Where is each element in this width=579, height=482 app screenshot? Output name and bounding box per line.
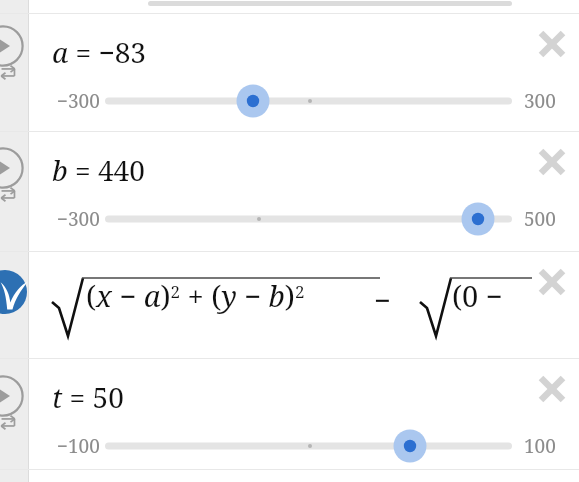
- button[interactable]: Toggle graph visibility: [0, 270, 27, 314]
- staticText: 500: [524, 206, 556, 230]
- staticText: −: [374, 280, 391, 319]
- staticText: 100: [524, 433, 556, 457]
- staticText: −100: [57, 433, 100, 457]
- button[interactable]: Play slider animation: [0, 375, 24, 417]
- button[interactable]: Play slider animation: [0, 25, 24, 67]
- button[interactable]: Slider for b: [100, 202, 520, 236]
- button[interactable]: (x − a)2 + (y − b)2: [0, 252, 579, 358]
- staticText: 300: [524, 88, 556, 112]
- button[interactable]: a = −83: [52, 33, 332, 77]
- staticText: t = 50: [52, 378, 124, 416]
- staticText: (0 −: [452, 276, 511, 315]
- button[interactable]: t = 50: [52, 378, 332, 422]
- button[interactable]: Loop mode: [0, 185, 17, 203]
- staticText: a = −83: [52, 33, 146, 71]
- button[interactable]: Delete expression: [534, 371, 570, 407]
- staticText: (x − a)2 + (y − b)2: [86, 276, 305, 315]
- button[interactable]: Delete expression: [534, 264, 570, 300]
- button[interactable]: Loop mode: [0, 413, 17, 431]
- button[interactable]: b = 440: [52, 151, 332, 195]
- button[interactable]: Play slider animation: [0, 147, 24, 189]
- button[interactable]: Loop mode: [0, 63, 17, 81]
- button[interactable]: Slider for a: [100, 84, 520, 118]
- staticText: −300: [57, 88, 100, 112]
- staticText: b = 440: [52, 151, 145, 189]
- button[interactable]: Slider for t: [100, 429, 520, 463]
- staticText: −300: [57, 206, 100, 230]
- button[interactable]: Delete expression: [534, 26, 570, 62]
- button[interactable]: Delete expression: [534, 144, 570, 180]
